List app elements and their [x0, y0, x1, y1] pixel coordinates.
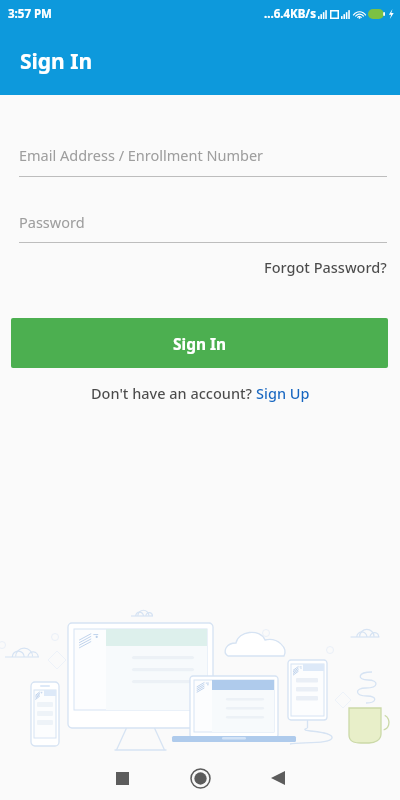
staticText: Forgot Password?: [264, 257, 387, 277]
staticText: Password: [19, 212, 85, 232]
button[interactable]: Email Address / Enrollment Number: [0, 143, 400, 177]
button[interactable]: Password: [0, 210, 400, 243]
staticText: Email Address / Enrollment Number: [19, 145, 264, 165]
button[interactable]: Back: [256, 756, 300, 800]
staticText: Don't have an account?: [91, 383, 256, 403]
button[interactable]: Sign Up: [256, 383, 310, 403]
button[interactable]: Sign In: [11, 318, 388, 368]
button[interactable]: Home: [178, 756, 222, 800]
staticText: Sign In: [20, 47, 93, 76]
staticText: Sign In: [173, 333, 227, 354]
staticText: ...6.4KB/s: [264, 6, 316, 22]
staticText: 3:57 PM: [8, 6, 52, 22]
staticText: Sign Up: [256, 383, 310, 403]
button[interactable]: Forgot Password?: [251, 254, 400, 280]
button[interactable]: Recents: [100, 756, 144, 800]
